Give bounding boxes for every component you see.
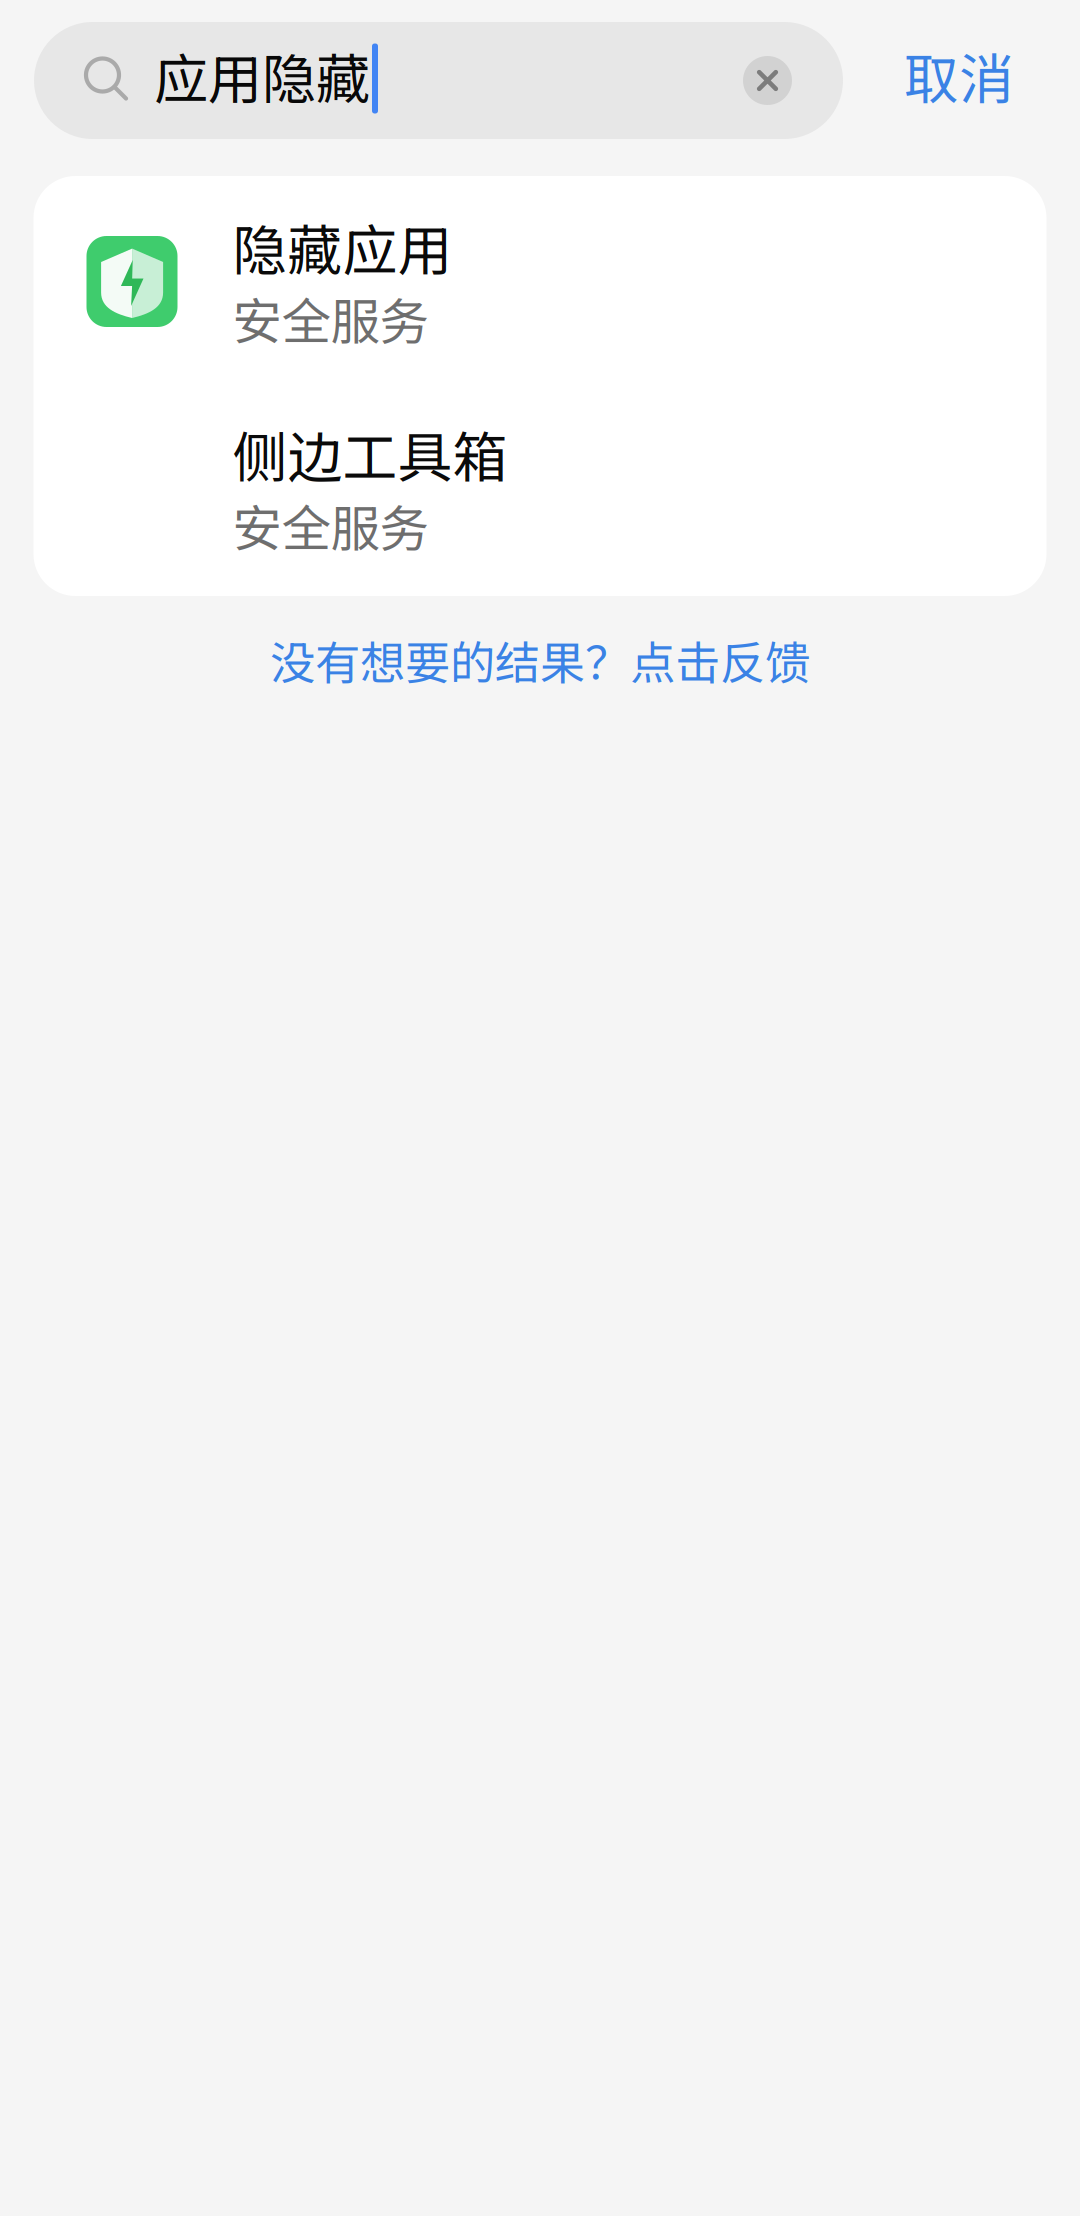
- staticText: 侧边工具箱: [232, 414, 507, 493]
- staticText: 应用隐藏: [154, 36, 370, 115]
- staticText: 没有想要的结果？点击反馈: [270, 627, 810, 693]
- button[interactable]: 取消: [890, 27, 1028, 134]
- staticText: 安全服务: [232, 282, 428, 354]
- staticText: 取消: [904, 36, 1014, 115]
- staticText: 隐藏应用: [232, 207, 452, 286]
- staticText: 安全服务: [232, 489, 428, 561]
- button[interactable]: 没有想要的结果？点击反馈: [240, 613, 840, 707]
- button[interactable]: Clear search text: [729, 42, 806, 119]
- button[interactable]: 侧边工具箱: [33, 414, 1046, 561]
- button[interactable]: 隐藏应用: [33, 207, 1046, 354]
